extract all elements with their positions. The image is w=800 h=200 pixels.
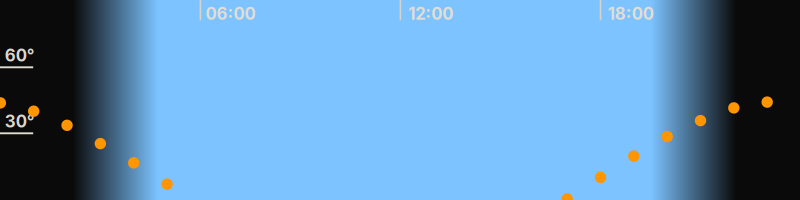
- staticText: 06:00: [206, 3, 256, 24]
- staticText: 60°: [5, 45, 35, 65]
- staticText: 12:00: [408, 3, 453, 24]
- staticText: 30°: [5, 111, 35, 131]
- staticText: 18:00: [608, 3, 654, 24]
